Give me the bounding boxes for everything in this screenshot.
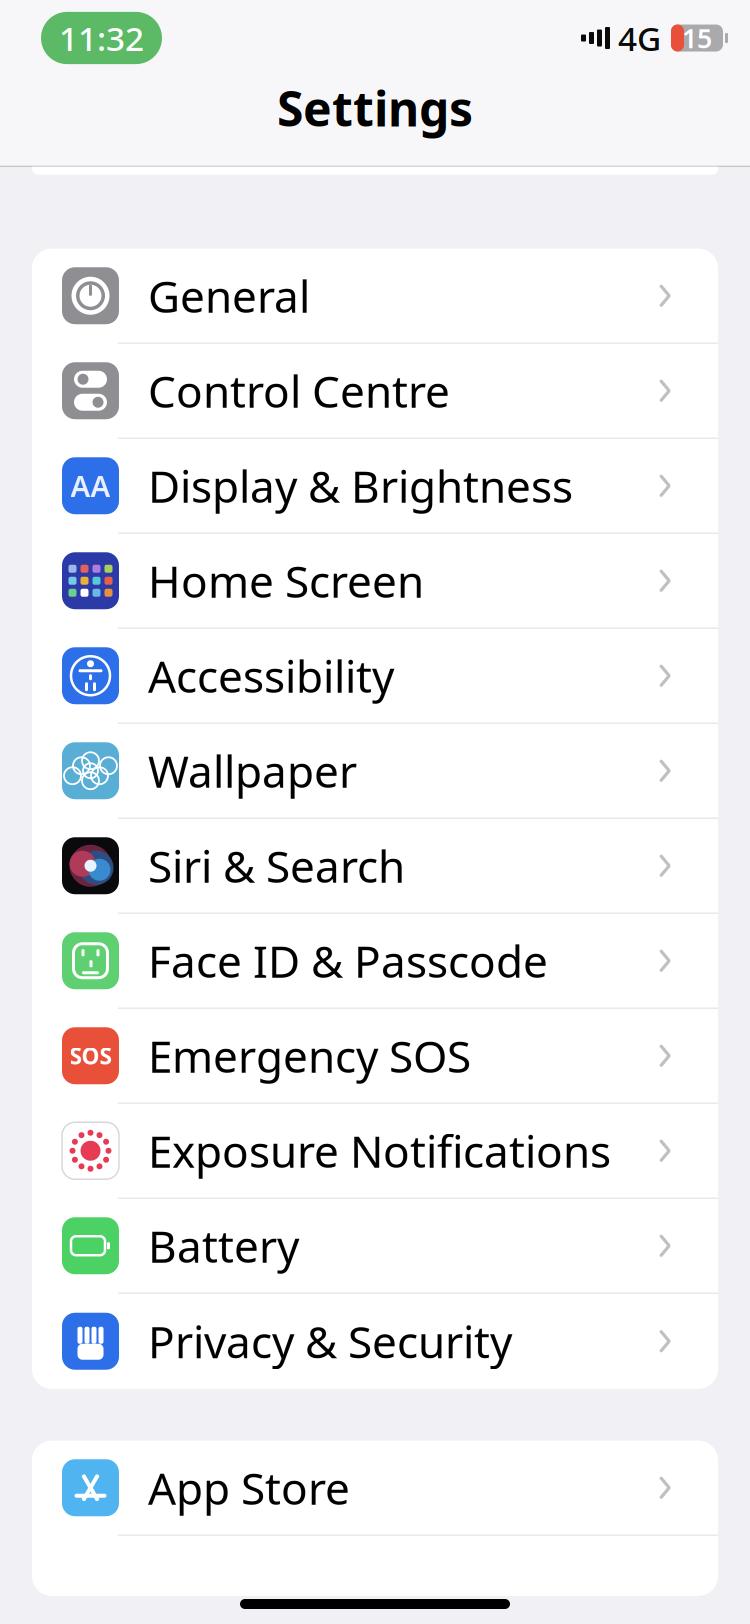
button[interactable]: SOS: [32, 1009, 718, 1104]
button[interactable]: App Store: [32, 1441, 718, 1536]
staticText: 15: [682, 20, 712, 56]
staticText: Control Centre: [148, 361, 450, 420]
button[interactable]: Privacy & Security: [32, 1294, 718, 1389]
staticText: Settings: [277, 76, 473, 140]
staticText: App Store: [148, 1458, 350, 1517]
button[interactable]: Wallpaper: [32, 724, 718, 819]
staticText: 11:32: [59, 16, 144, 60]
button[interactable]: Exposure Notifications: [32, 1104, 718, 1199]
button[interactable]: Face ID & Passcode: [32, 914, 718, 1009]
staticText: Accessibility: [148, 646, 394, 705]
staticText: Battery: [148, 1216, 299, 1275]
staticText: Home Screen: [148, 551, 424, 610]
button[interactable]: Control Centre: [32, 344, 718, 439]
staticText: Display & Brightness: [148, 456, 573, 515]
button[interactable]: AA: [32, 439, 718, 534]
staticText: Privacy & Security: [148, 1312, 512, 1370]
staticText: Face ID & Passcode: [148, 931, 548, 990]
button[interactable]: Accessibility: [32, 629, 718, 724]
staticText: Siri & Search: [148, 836, 405, 895]
staticText: Wallpaper: [148, 741, 357, 800]
staticText: AA: [70, 466, 110, 505]
staticText: General: [148, 266, 310, 325]
staticText: Emergency SOS: [148, 1026, 471, 1085]
staticText: 4G: [618, 16, 661, 60]
staticText: Exposure Notifications: [148, 1121, 611, 1180]
staticText: SOS: [69, 1041, 111, 1071]
button[interactable]: Siri & Search: [32, 819, 718, 914]
button[interactable]: Home Screen: [32, 534, 718, 629]
button[interactable]: General: [32, 249, 718, 344]
button[interactable]: Battery: [32, 1199, 718, 1294]
